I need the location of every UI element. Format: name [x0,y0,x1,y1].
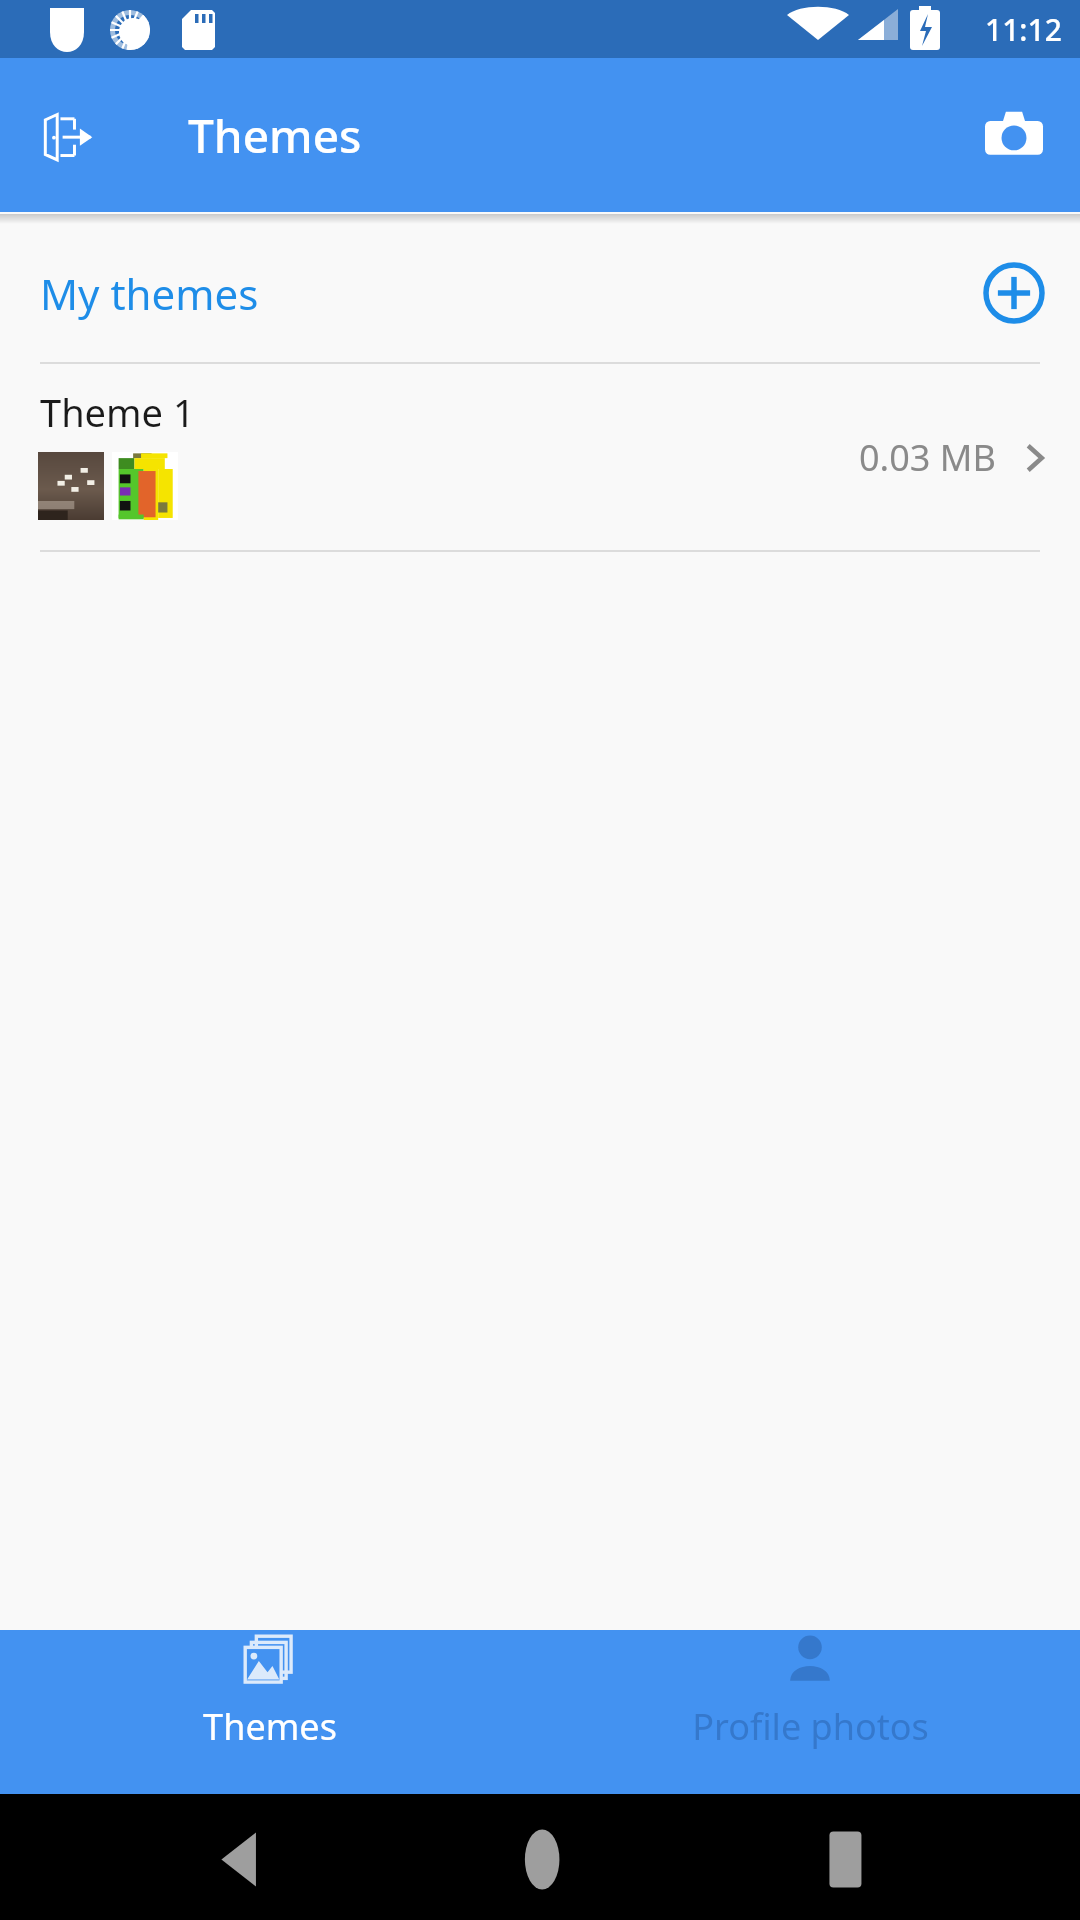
button[interactable]: Camera [970,91,1058,179]
button[interactable]: Theme 1 [0,364,1080,552]
button[interactable]: Add theme [976,255,1052,331]
staticText: Themes [188,104,362,167]
staticText: Theme 1 [40,386,195,438]
button[interactable]: Profile photos [540,1630,1080,1751]
staticText: My themes [40,265,259,322]
button[interactable]: Themes [0,1630,540,1751]
button[interactable]: Log out [24,91,112,179]
staticText: 0.03 MB [859,433,996,482]
staticText: 11:12 [985,9,1062,50]
staticText: Themes [203,1702,337,1751]
staticText: Profile photos [692,1702,929,1751]
